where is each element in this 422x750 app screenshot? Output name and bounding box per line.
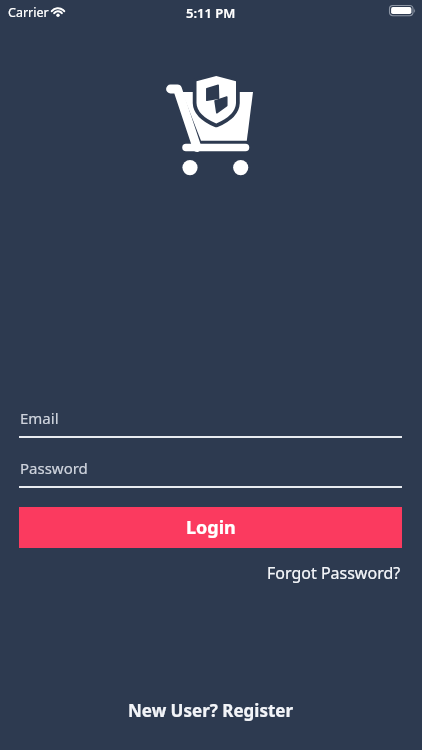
staticText: Login [186,515,236,540]
button[interactable]: New User? Register [128,699,294,722]
staticText: 5:11 PM [186,4,236,22]
button[interactable]: Password [19,455,402,488]
button[interactable]: Email [19,405,402,438]
button[interactable]: Login [19,507,402,548]
button[interactable]: Forgot Password? [267,562,401,584]
staticText: New User? Register [128,699,294,722]
staticText: Email [20,408,59,428]
staticText: Password [20,458,88,478]
staticText: Carrier [8,4,49,21]
staticText: Forgot Password? [267,562,401,584]
